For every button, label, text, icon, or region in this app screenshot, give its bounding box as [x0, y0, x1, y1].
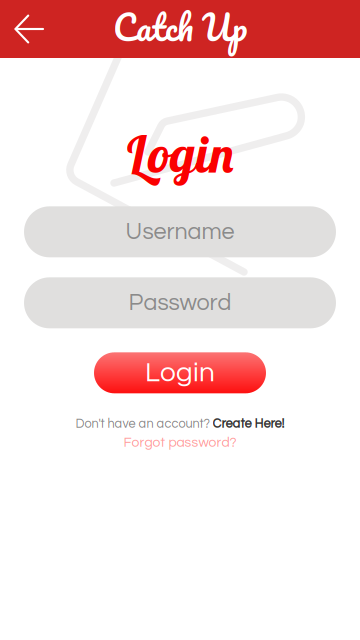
staticText: Forgot password? [123, 435, 236, 450]
staticText: Login [124, 122, 235, 185]
staticText: Create Here! [212, 417, 284, 430]
button[interactable]: Login [94, 352, 266, 393]
staticText: Don't have an account? [75, 417, 212, 430]
staticText: Password [128, 291, 231, 315]
button[interactable]: Back [0, 7, 52, 51]
staticText: Username [125, 220, 234, 244]
button[interactable]: Create Here! [212, 417, 284, 430]
staticText: Login [145, 358, 215, 387]
button[interactable]: Forgot password? [123, 435, 236, 450]
staticText: Catch Up [113, 0, 247, 56]
